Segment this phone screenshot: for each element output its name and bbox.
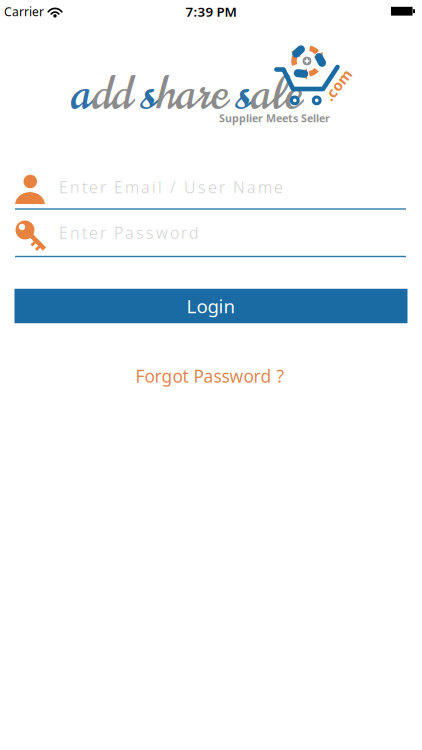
staticText: Forgot Password ? [135,364,284,387]
staticText: Supplier Meets Seller [219,111,330,125]
staticText: add share sale [71,61,302,126]
staticText: E n t e r E m a i l / U s e r N a m e [59,176,283,198]
staticText: .com [320,75,355,95]
staticText: Login [186,294,235,318]
staticText: 7:39 PM [185,3,236,20]
staticText: Carrier [4,3,44,19]
staticText: E n t e r P a s s w o r d [59,222,199,243]
